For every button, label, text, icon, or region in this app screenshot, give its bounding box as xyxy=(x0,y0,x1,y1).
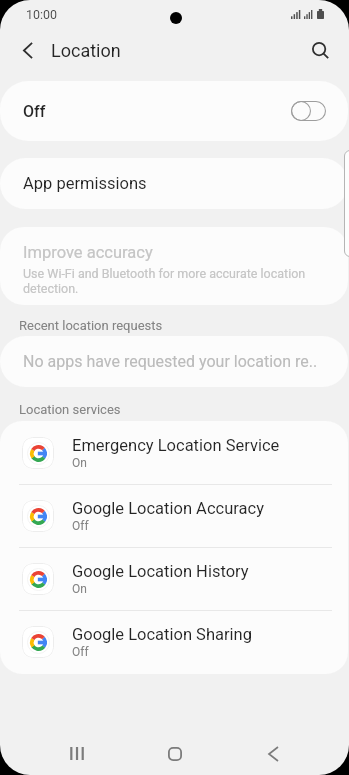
staticText: Recent location requests xyxy=(19,318,163,333)
staticText: On xyxy=(72,456,87,470)
button[interactable]: App permissions xyxy=(0,158,348,209)
staticText: No apps have requested your location re.… xyxy=(23,352,318,371)
button[interactable]: Google Location Sharing xyxy=(0,610,348,673)
staticText: Off xyxy=(72,645,89,659)
button[interactable]: Emergency Location Service xyxy=(0,421,348,484)
staticText: Google Location Sharing xyxy=(72,625,252,644)
staticText: Location xyxy=(51,40,121,61)
staticText: Off xyxy=(23,102,46,121)
button[interactable]: Search xyxy=(302,32,339,69)
button[interactable]: Google Location History xyxy=(0,547,348,610)
staticText: On xyxy=(72,582,87,596)
button[interactable]: Recent apps xyxy=(47,731,107,775)
button[interactable]: Google Location Accuracy xyxy=(0,484,348,547)
staticText: Use Wi-Fi and Bluetooth for more accurat… xyxy=(23,266,306,296)
button[interactable]: Home xyxy=(145,731,205,775)
button[interactable]: Navigate up xyxy=(9,32,46,69)
button[interactable]: Off xyxy=(0,81,348,141)
staticText: Location services xyxy=(19,402,121,417)
staticText: Google Location History xyxy=(72,562,249,581)
staticText: Google Location Accuracy xyxy=(72,499,264,518)
button[interactable]: Improve accuracy xyxy=(0,227,348,305)
staticText: Improve accuracy xyxy=(23,243,153,262)
button[interactable]: Back xyxy=(243,731,303,775)
staticText: Off xyxy=(72,519,89,533)
staticText: Emergency Location Service xyxy=(72,436,280,455)
staticText: App permissions xyxy=(23,174,147,193)
staticText: 10:00 xyxy=(26,7,58,22)
